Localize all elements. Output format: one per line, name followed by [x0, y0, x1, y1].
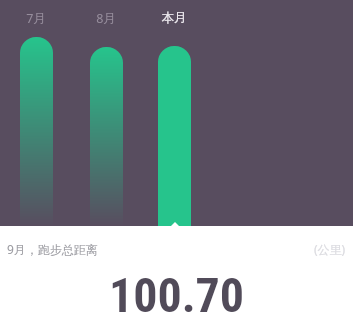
button[interactable]: 本月 [158, 46, 191, 226]
other: Selected month indicator [171, 222, 179, 226]
staticText: 8月 [76, 10, 136, 27]
staticText: (公里) [314, 241, 346, 257]
button[interactable]: 8月 [90, 47, 123, 226]
staticText: 9月，跑步总距离 [7, 241, 98, 257]
staticText: 本月 [144, 10, 204, 26]
staticText: 7月 [6, 10, 66, 27]
button[interactable]: 7月 [20, 37, 53, 226]
staticText: 100.70 [0, 267, 353, 319]
